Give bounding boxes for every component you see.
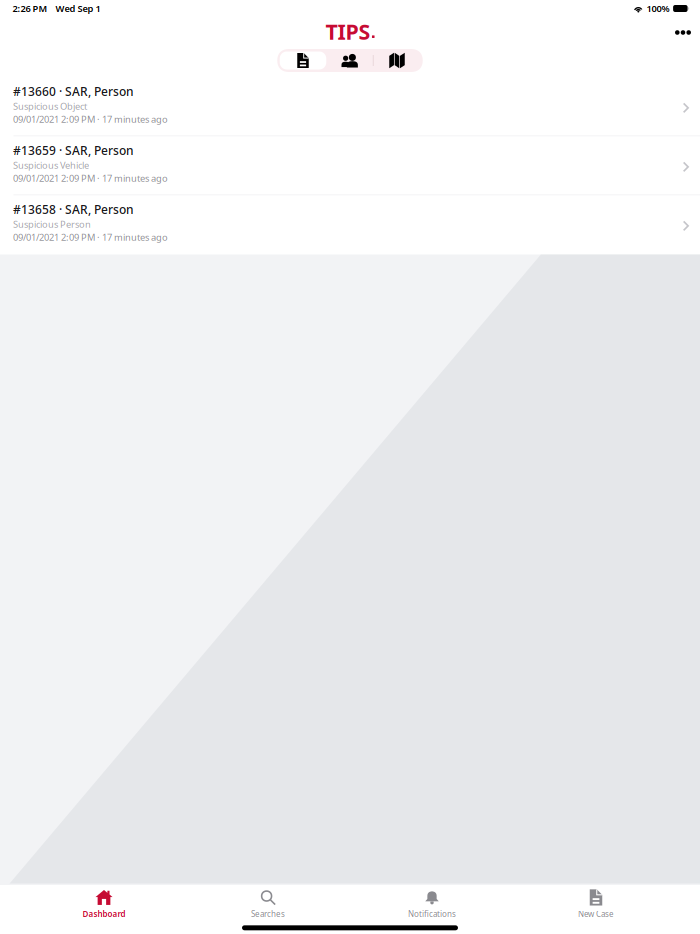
staticText: TIPS	[325, 17, 370, 46]
staticText: Suspicious Vehicle	[13, 159, 89, 171]
staticText: Searches	[251, 909, 285, 919]
staticText: Wed Sep 1	[55, 2, 100, 15]
button[interactable]: #13659 · SAR, Person	[0, 136, 700, 195]
button[interactable]: More options	[665, 20, 700, 45]
button[interactable]: Notifications	[350, 884, 514, 925]
button[interactable]: New Case	[514, 884, 678, 925]
staticText: Suspicious Object	[13, 100, 87, 112]
staticText: 2:26 PM	[12, 2, 47, 15]
staticText: Notifications	[408, 909, 456, 919]
staticText: Dashboard	[82, 909, 125, 919]
button[interactable]: Searches	[186, 884, 350, 925]
button[interactable]: #13658 · SAR, Person	[0, 195, 700, 254]
button[interactable]: #13660 · SAR, Person	[0, 77, 700, 136]
button[interactable]: Dashboard	[22, 884, 186, 925]
button[interactable]: People	[326, 51, 373, 69]
staticText: #13658 · SAR, Person	[13, 201, 134, 217]
staticText: #13660 · SAR, Person	[13, 83, 134, 99]
button[interactable]: Map	[374, 51, 420, 69]
staticText: 100%	[647, 2, 670, 15]
staticText: New Case	[578, 909, 614, 919]
button[interactable]: Cases	[280, 51, 326, 69]
staticText: 09/01/2021 2:09 PM · 17 minutes ago	[13, 172, 168, 184]
staticText: #13659 · SAR, Person	[13, 142, 134, 158]
staticText: Suspicious Person	[13, 218, 91, 230]
staticText: 09/01/2021 2:09 PM · 17 minutes ago	[13, 231, 168, 243]
staticText: 09/01/2021 2:09 PM · 17 minutes ago	[13, 113, 168, 125]
